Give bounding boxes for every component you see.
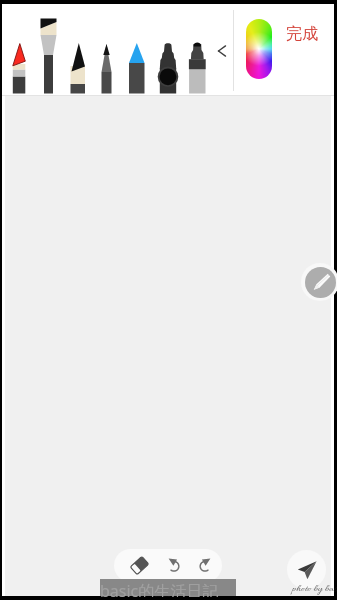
button[interactable]: Draw	[305, 267, 336, 298]
button[interactable]: Eraser	[128, 554, 151, 577]
button[interactable]: Highlighter	[178, 4, 210, 96]
staticText: photo by basic	[292, 582, 337, 596]
staticText: 完成	[286, 24, 318, 44]
button[interactable]: Blue pencil	[117, 4, 146, 96]
button[interactable]: Brush	[36, 4, 63, 96]
button[interactable]: 完成	[284, 22, 320, 46]
button[interactable]: Graphite pencil	[90, 4, 117, 96]
staticText: basic的生活日記	[100, 580, 219, 597]
button[interactable]: Black marker	[146, 4, 178, 96]
button[interactable]: More tools	[211, 40, 233, 62]
button[interactable]: Marker red	[9, 4, 36, 96]
button[interactable]: Color picker	[246, 19, 272, 79]
button[interactable]: Pencil	[63, 4, 90, 96]
button[interactable]: Redo	[193, 553, 216, 576]
button[interactable]: Send	[287, 550, 326, 589]
button[interactable]: Undo	[162, 553, 185, 576]
